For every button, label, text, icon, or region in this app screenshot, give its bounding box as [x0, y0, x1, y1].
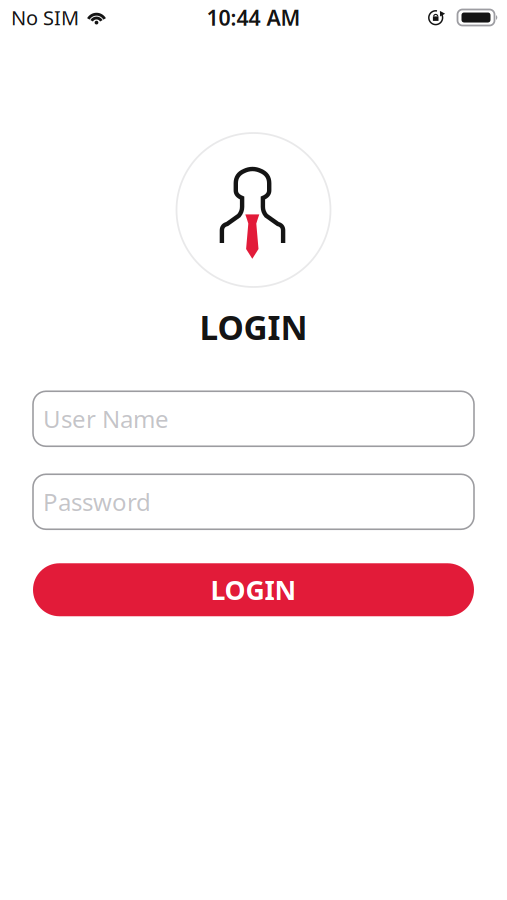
staticText: User Name — [43, 403, 169, 435]
button[interactable]: LOGIN — [33, 563, 474, 616]
staticText: LOGIN — [199, 305, 307, 349]
staticText: LOGIN — [210, 572, 296, 607]
staticText: 10:44 AM — [206, 3, 300, 32]
button[interactable]: User Name — [33, 391, 474, 446]
staticText: Password — [43, 486, 151, 518]
button[interactable]: Password — [33, 474, 474, 529]
staticText: No SIM — [11, 4, 79, 31]
